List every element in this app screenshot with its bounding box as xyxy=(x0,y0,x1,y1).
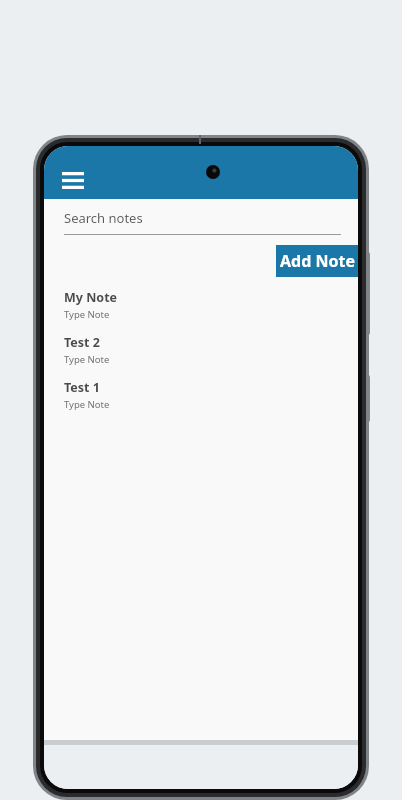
staticText: My Note xyxy=(64,289,118,306)
button[interactable]: Test 1 xyxy=(44,376,358,421)
button[interactable]: Add Note xyxy=(276,245,358,277)
staticText: Test 1 xyxy=(64,379,100,396)
staticText: Type Note xyxy=(64,353,110,366)
staticText: Search notes xyxy=(64,209,143,227)
staticText: Type Note xyxy=(64,308,110,321)
staticText: Add Note xyxy=(280,250,355,272)
staticText: Type Note xyxy=(64,398,110,411)
button[interactable]: My Note xyxy=(44,286,358,331)
button[interactable]: Open navigation menu xyxy=(58,168,88,192)
button[interactable]: Test 2 xyxy=(44,331,358,376)
staticText: Test 2 xyxy=(64,334,100,351)
